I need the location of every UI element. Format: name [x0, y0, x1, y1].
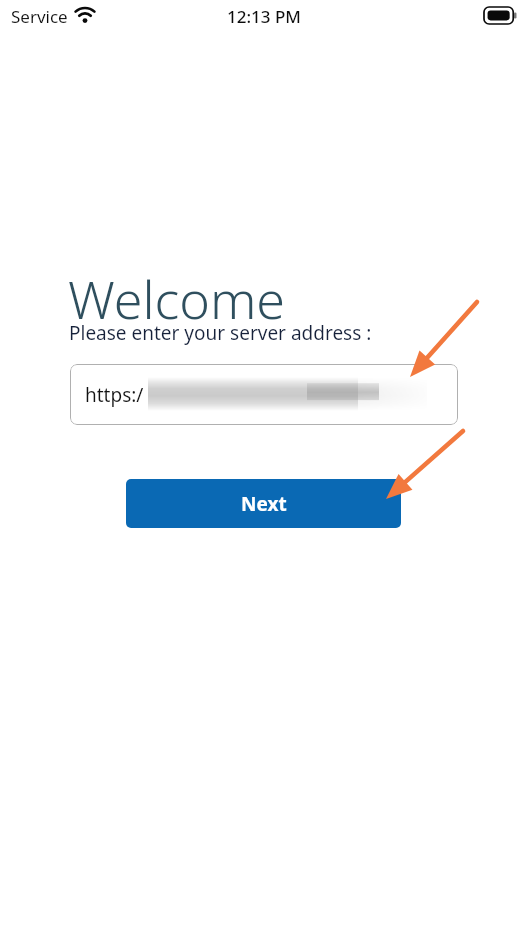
button[interactable]: Next [126, 479, 401, 528]
staticText: 12:13 PM [227, 5, 301, 28]
staticText: Please enter your server address : [69, 320, 372, 346]
button[interactable]: Server address input [70, 364, 458, 425]
other: Battery full [484, 7, 518, 24]
staticText: Service [11, 5, 68, 28]
staticText: Welcome [68, 263, 286, 321]
staticText: Next [241, 491, 287, 517]
staticText: https:/ [85, 382, 144, 408]
other: Wi-Fi signal [73, 5, 97, 26]
